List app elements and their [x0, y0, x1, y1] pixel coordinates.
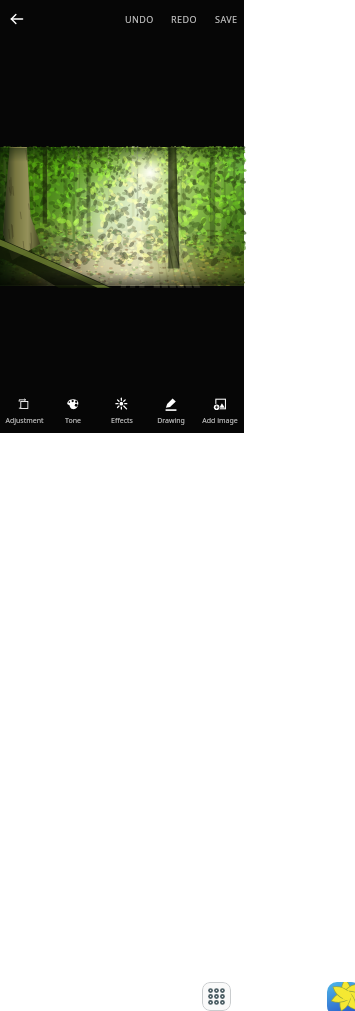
staticText: Drawing: [157, 416, 185, 426]
button[interactable]: Back: [3, 5, 31, 33]
button[interactable]: Gallery: [327, 982, 355, 1011]
staticText: Adjustment: [5, 416, 44, 426]
staticText: REDO: [171, 13, 198, 25]
button[interactable]: SAVE: [207, 9, 246, 29]
button[interactable]: Apps: [202, 982, 231, 1011]
button[interactable]: REDO: [163, 9, 206, 29]
button[interactable]: Drawing: [146, 394, 195, 426]
staticText: SAVE: [215, 13, 238, 25]
staticText: Effects: [111, 416, 133, 426]
button[interactable]: Effects: [97, 394, 146, 426]
button[interactable]: UNDO: [117, 9, 162, 29]
staticText: Add image: [202, 416, 238, 426]
button[interactable]: Tone: [48, 394, 97, 426]
button[interactable]: Adjustment: [0, 394, 48, 426]
button[interactable]: Add image: [195, 394, 244, 426]
staticText: Tone: [65, 416, 81, 426]
staticText: UNDO: [125, 13, 154, 25]
